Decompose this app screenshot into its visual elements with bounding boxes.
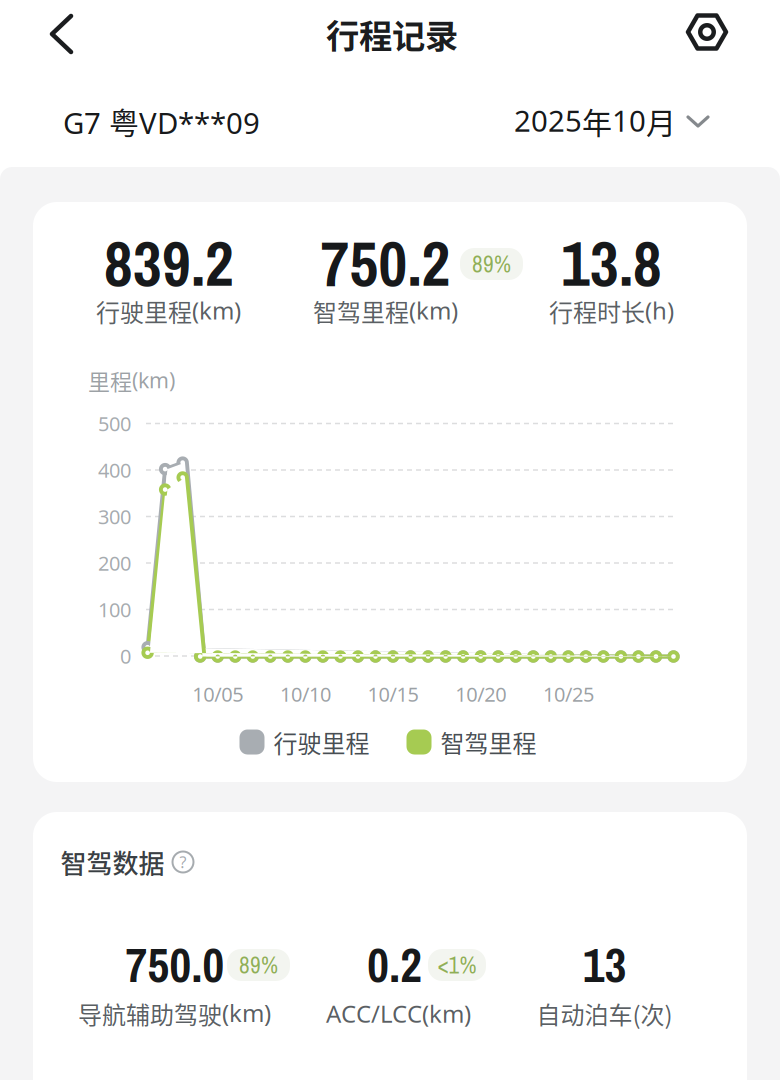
button[interactable]: G7 粤VD***09: [63, 100, 343, 142]
staticText: 智驾数据: [60, 843, 164, 881]
staticText: G7 粤VD***09: [63, 100, 260, 142]
staticText: 0: [120, 643, 131, 669]
staticText: ACC/LCC(km): [326, 998, 471, 1029]
staticText: 自动泊车(次): [536, 996, 672, 1031]
staticText: 10/15: [368, 681, 419, 707]
staticText: 0.2: [367, 933, 422, 997]
button[interactable]: 2025年10月: [430, 100, 710, 142]
staticText: 智驾里程: [440, 725, 536, 759]
staticText: 10/25: [543, 681, 594, 707]
staticText: 10/10: [280, 681, 331, 707]
staticText: 89%: [239, 949, 278, 981]
button[interactable]: Back: [40, 11, 84, 57]
staticText: 400: [98, 457, 131, 483]
staticText: 100: [98, 596, 131, 623]
staticText: 智驾里程(km): [313, 294, 458, 328]
staticText: <1%: [437, 949, 476, 981]
staticText: 300: [98, 503, 131, 530]
button[interactable]: Settings: [685, 10, 729, 54]
staticText: 导航辅助驾驶(km): [78, 997, 271, 1030]
staticText: 行驶里程: [273, 725, 369, 759]
staticText: 10/20: [455, 681, 506, 707]
staticText: 13.8: [561, 221, 662, 305]
staticText: 89%: [472, 248, 511, 280]
staticText: 13: [583, 933, 627, 997]
staticText: 200: [98, 550, 131, 576]
staticText: 750.0: [125, 933, 224, 997]
staticText: 10/05: [192, 681, 243, 707]
staticText: 750.2: [320, 221, 450, 305]
staticText: 行程记录: [326, 10, 458, 58]
staticText: ?: [179, 851, 186, 873]
staticText: 839.2: [104, 221, 234, 305]
staticText: 行程时长(h): [549, 294, 674, 328]
staticText: 500: [98, 410, 131, 437]
staticText: 2025年10月: [514, 100, 676, 142]
staticText: 里程(km): [88, 365, 175, 396]
staticText: 行驶里程(km): [96, 294, 241, 328]
button[interactable]: 智驾数据说明: [172, 851, 193, 873]
